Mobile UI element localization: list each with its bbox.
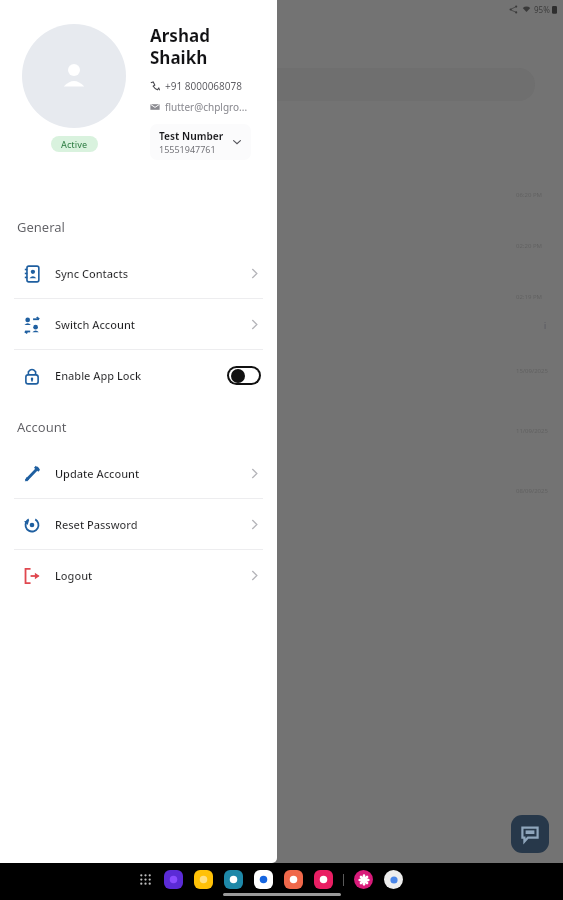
button[interactable]: New chat: [511, 815, 549, 853]
staticText: 02:20 PM: [516, 242, 542, 250]
staticText: 15/09/2025: [516, 367, 548, 375]
staticText: 06:20 PM: [516, 191, 542, 199]
button[interactable]: App: [384, 870, 403, 889]
staticText: Test Number: [159, 129, 224, 143]
staticText: General: [17, 218, 65, 236]
button[interactable]: App: [164, 870, 183, 889]
staticText: Account: [17, 418, 67, 436]
button[interactable]: Reset Password: [0, 499, 277, 549]
staticText: Update Account: [55, 466, 140, 481]
button[interactable]: Update Account: [0, 448, 277, 498]
staticText: Switch Account: [55, 317, 136, 332]
button[interactable]: Enable App Lock toggle: [229, 368, 259, 383]
staticText: Enable App Lock: [55, 368, 142, 383]
staticText: Sync Contacts: [55, 266, 129, 281]
staticText: Logout: [55, 568, 93, 583]
staticText: i: [544, 320, 547, 331]
button[interactable]: All apps: [138, 872, 153, 887]
staticText: 11/09/2025: [516, 427, 548, 435]
staticText: 02:19 PM: [516, 293, 542, 301]
button[interactable]: Sync Contacts: [0, 248, 277, 298]
button[interactable]: Switch Account: [0, 299, 277, 349]
button[interactable]: Test Number: [150, 124, 251, 160]
staticText: 15551947761: [159, 143, 216, 155]
button[interactable]: App: [254, 870, 273, 889]
button[interactable]: App: [194, 870, 213, 889]
button[interactable]: App: [354, 870, 373, 889]
button[interactable]: Logout: [0, 550, 277, 600]
button[interactable]: App: [284, 870, 303, 889]
staticText: 95%: [534, 4, 550, 15]
button[interactable]: App: [224, 870, 243, 889]
button[interactable]: App: [314, 870, 333, 889]
staticText: Active: [61, 138, 88, 150]
staticText: Arshad Shaikh: [150, 24, 210, 69]
staticText: 08/09/2025: [516, 487, 548, 495]
staticText: flutter@chplgro...: [165, 100, 248, 114]
staticText: Reset Password: [55, 517, 138, 532]
staticText: +91 8000068078: [165, 79, 242, 93]
button[interactable]: Enable App Lock: [0, 350, 277, 400]
